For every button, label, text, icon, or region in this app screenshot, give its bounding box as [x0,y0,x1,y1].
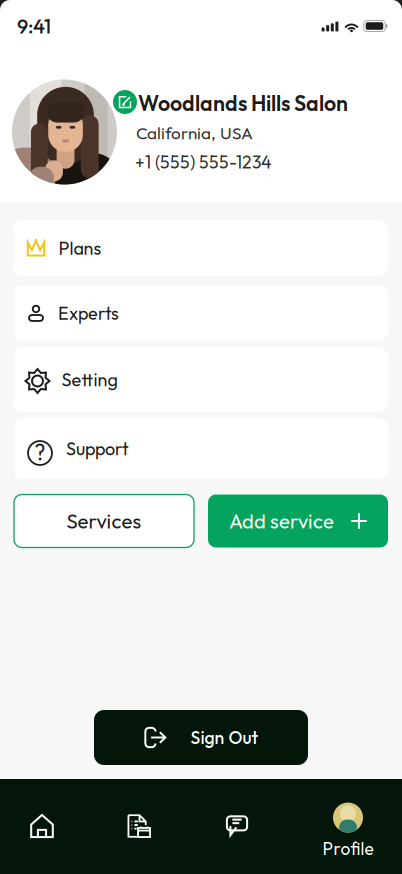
staticText: Plans [58,237,101,259]
button[interactable]: Edit profile [113,90,137,114]
staticText: Profile [322,838,373,859]
button[interactable]: Profile [308,799,388,863]
staticText: Experts [58,302,119,324]
staticText: Services [66,508,141,534]
button[interactable]: Messages [197,796,277,856]
button[interactable]: Sign Out [94,710,308,765]
staticText: 9:41 [17,13,51,39]
staticText: Support [66,437,129,460]
staticText: Sign Out [190,726,258,749]
button[interactable]: Services [14,494,194,547]
button[interactable]: Plans [14,220,388,276]
button[interactable]: Bookings [99,796,179,856]
button[interactable]: Setting [14,347,388,412]
staticText: Add service [229,508,334,534]
button[interactable]: Add service [208,494,388,547]
staticText: California, USA [136,122,253,144]
button[interactable]: Home [2,796,82,856]
staticText: ? [34,439,45,466]
staticText: Setting [61,368,117,391]
staticText: +1 (555) 555-1234 [135,151,272,173]
staticText: Woodlands Hills Salon [138,90,348,116]
button[interactable]: Experts [14,285,388,340]
button[interactable]: ? [14,418,388,479]
